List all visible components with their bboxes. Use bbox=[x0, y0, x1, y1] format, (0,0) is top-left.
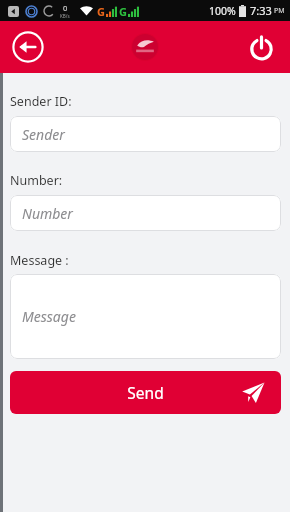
button[interactable]: Send bbox=[10, 371, 281, 414]
staticText: Number: bbox=[10, 172, 63, 189]
staticText: Sender ID: bbox=[10, 93, 72, 110]
staticText: 100% bbox=[209, 4, 236, 18]
staticText: Sender bbox=[22, 125, 65, 144]
staticText: 0 bbox=[63, 3, 68, 13]
button[interactable]: Power bbox=[244, 30, 278, 64]
staticText: Message bbox=[22, 307, 76, 326]
button[interactable]: Back bbox=[10, 29, 46, 65]
staticText: KB/s bbox=[60, 13, 70, 19]
staticText: PM bbox=[274, 6, 285, 16]
staticText: G bbox=[119, 4, 127, 19]
button[interactable]: Sender bbox=[10, 116, 281, 152]
staticText: Message : bbox=[10, 252, 69, 269]
staticText: Number bbox=[22, 204, 73, 223]
staticText: 7:33 bbox=[250, 3, 272, 18]
staticText: Send bbox=[127, 382, 164, 403]
button[interactable]: Message bbox=[10, 274, 281, 359]
button[interactable]: Logo bbox=[131, 33, 159, 61]
staticText: G bbox=[97, 4, 105, 19]
button[interactable]: Number bbox=[10, 195, 281, 231]
